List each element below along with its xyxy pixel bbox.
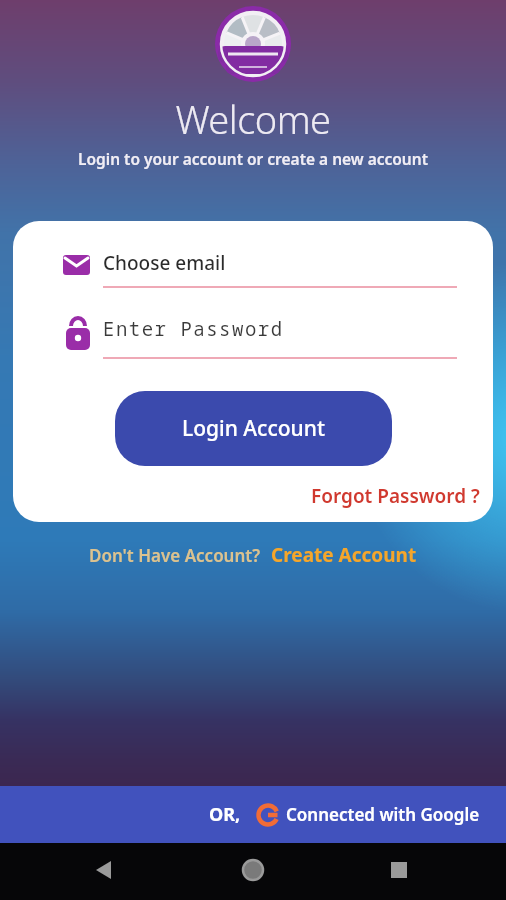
staticText: OR, [209,802,241,827]
staticText: Enter Password [103,316,284,342]
staticText: Login to your account or create a new ac… [0,148,506,169]
button[interactable]: Create Account [271,542,417,568]
button[interactable]: Login Account [115,391,392,466]
button[interactable]: Choose email [103,243,463,283]
staticText: Don't Have Account? [89,544,261,567]
staticText: Welcome [0,93,506,145]
staticText: Forgot Password ? [311,483,480,509]
button[interactable]: Enter Password [103,309,463,349]
staticText: Choose email [103,250,226,276]
button[interactable]: Forgot Password ? [311,483,480,509]
staticText: Login Account [182,414,325,443]
button[interactable]: OR, [0,786,506,843]
staticText: Connected with Google [286,803,480,826]
staticText: Create Account [271,542,417,568]
